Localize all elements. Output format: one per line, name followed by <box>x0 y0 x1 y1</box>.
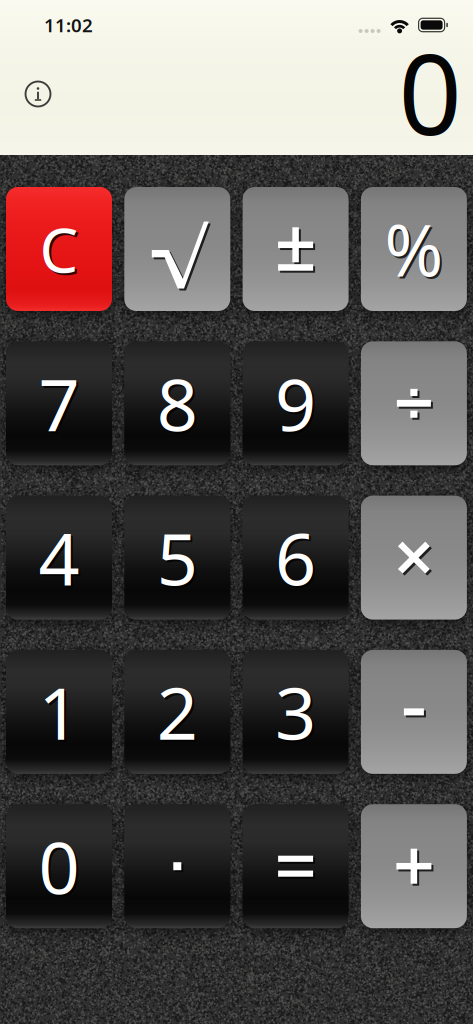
staticText: 6 <box>275 510 316 605</box>
button[interactable]: 1 <box>6 650 112 774</box>
staticText: 3 <box>275 664 316 760</box>
button[interactable]: 7 <box>6 341 112 465</box>
staticText: 3 <box>277 666 318 762</box>
staticText: 1 <box>40 666 81 762</box>
button[interactable] <box>361 804 467 928</box>
button[interactable]: C <box>6 187 112 311</box>
button[interactable]: 5 <box>124 496 230 620</box>
staticText: 9 <box>275 355 316 451</box>
staticText: 7 <box>40 357 81 453</box>
staticText: 4 <box>38 510 79 605</box>
button[interactable]: 8 <box>124 341 230 465</box>
button[interactable]: 3 <box>243 650 349 774</box>
staticText: 8 <box>157 355 198 451</box>
staticText: % <box>384 202 443 296</box>
staticText: 0 <box>398 18 461 165</box>
staticText: 5 <box>159 512 200 607</box>
button[interactable]: Info <box>15 71 61 117</box>
staticText: 1 <box>38 664 79 760</box>
staticText: 0 <box>40 820 81 916</box>
staticText: 11:02 <box>44 13 93 37</box>
button[interactable]: % <box>361 187 467 311</box>
staticText: 8 <box>159 357 200 453</box>
staticText: 2 <box>159 666 200 762</box>
button[interactable]: 4 <box>6 496 112 620</box>
button[interactable] <box>124 187 230 311</box>
button[interactable] <box>361 496 467 620</box>
button[interactable] <box>361 341 467 465</box>
staticText: 7 <box>38 355 79 451</box>
staticText: 2 <box>157 664 198 760</box>
button[interactable] <box>243 804 349 928</box>
staticText: 0 <box>38 818 79 914</box>
staticText: 5 <box>157 510 198 605</box>
button[interactable] <box>361 650 467 774</box>
button[interactable]: 0 <box>6 804 112 928</box>
button[interactable]: 9 <box>243 341 349 465</box>
button[interactable]: 6 <box>243 496 349 620</box>
button[interactable]: 2 <box>124 650 230 774</box>
staticText: 4 <box>40 512 81 607</box>
button[interactable] <box>243 187 349 311</box>
staticText: 6 <box>277 512 318 607</box>
staticText: C <box>41 210 80 292</box>
staticText: % <box>386 204 445 298</box>
staticText: 9 <box>277 357 318 453</box>
staticText: C <box>39 208 78 290</box>
button[interactable] <box>124 804 230 928</box>
